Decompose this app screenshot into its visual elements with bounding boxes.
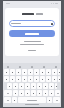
button[interactable]: Show password (9, 20, 55, 27)
button[interactable] (28, 69, 33, 75)
button[interactable] (40, 69, 45, 75)
button[interactable] (34, 69, 39, 75)
button[interactable] (49, 83, 54, 89)
button[interactable] (37, 90, 42, 96)
button[interactable] (55, 83, 57, 89)
button[interactable] (52, 69, 57, 75)
button[interactable] (10, 69, 15, 75)
button[interactable] (13, 90, 18, 96)
button[interactable] (49, 90, 54, 96)
button[interactable] (4, 90, 12, 96)
button[interactable] (4, 69, 9, 75)
button[interactable] (10, 76, 15, 82)
button[interactable] (19, 83, 24, 89)
button[interactable] (4, 97, 11, 103)
button[interactable] (46, 69, 51, 75)
button[interactable] (22, 76, 27, 82)
button[interactable] (4, 76, 9, 82)
button[interactable] (13, 83, 18, 89)
button[interactable] (16, 76, 21, 82)
button[interactable] (58, 69, 60, 75)
button[interactable] (9, 30, 55, 37)
button[interactable] (52, 76, 57, 82)
button[interactable] (19, 90, 24, 96)
button[interactable]: Keyboard tool (43, 66, 45, 68)
button[interactable] (55, 90, 60, 96)
other: Show password (51, 23, 53, 25)
button[interactable]: Keyboard tool (7, 66, 9, 68)
button[interactable] (31, 83, 36, 89)
button[interactable] (31, 90, 36, 96)
button[interactable] (7, 83, 12, 89)
button[interactable] (43, 90, 48, 96)
button[interactable] (18, 97, 46, 103)
button[interactable] (22, 69, 27, 75)
button[interactable] (25, 83, 30, 89)
button[interactable] (47, 97, 52, 103)
button[interactable] (34, 76, 39, 82)
button[interactable] (58, 76, 60, 82)
button[interactable] (53, 97, 60, 103)
button[interactable] (43, 83, 48, 89)
button[interactable] (9, 47, 55, 54)
button[interactable] (16, 69, 21, 75)
button[interactable] (28, 76, 33, 82)
button[interactable]: Keyboard tool (31, 66, 33, 68)
button[interactable]: Keyboard tool (55, 66, 57, 68)
button[interactable] (12, 97, 17, 103)
button[interactable]: Keyboard tool (19, 66, 21, 68)
button[interactable] (37, 83, 42, 89)
button[interactable] (46, 76, 51, 82)
button[interactable] (25, 90, 30, 96)
button[interactable] (40, 76, 45, 82)
